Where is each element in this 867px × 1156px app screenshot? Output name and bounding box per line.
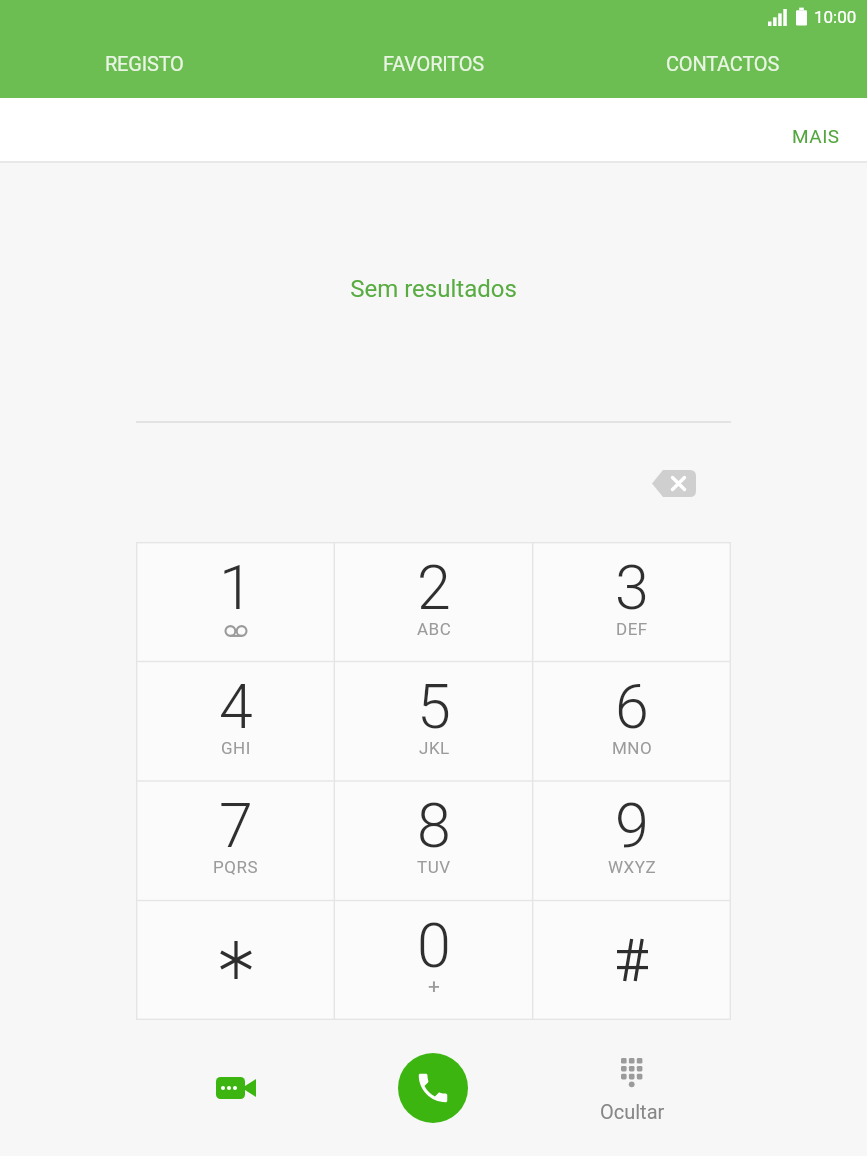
staticText: DEF bbox=[616, 619, 648, 639]
staticText: 3 bbox=[615, 552, 649, 623]
staticText: MAIS bbox=[792, 125, 840, 147]
staticText: Sem resultados bbox=[0, 275, 867, 303]
button[interactable] bbox=[186, 1038, 286, 1138]
button[interactable]: CONTACTOS bbox=[578, 33, 867, 98]
button[interactable]: 9 bbox=[533, 780, 731, 900]
staticText: 9 bbox=[615, 790, 649, 861]
button[interactable]: FAVORITOS bbox=[289, 33, 578, 98]
staticText: TUV bbox=[417, 857, 451, 877]
button[interactable]: 4 bbox=[136, 661, 335, 780]
button[interactable]: 3 bbox=[533, 542, 731, 661]
staticText: WXYZ bbox=[608, 857, 657, 877]
staticText: MNO bbox=[612, 738, 653, 758]
button[interactable]: 6 bbox=[533, 661, 731, 780]
staticText: REGISTO bbox=[105, 52, 184, 75]
button[interactable]: Ocultar bbox=[582, 1045, 682, 1135]
staticText: CONTACTOS bbox=[666, 52, 780, 75]
staticText: 8 bbox=[417, 790, 451, 861]
button[interactable]: 0 bbox=[335, 900, 533, 1020]
staticText: PQRS bbox=[213, 857, 258, 877]
staticText: 4 bbox=[219, 671, 253, 742]
staticText: JKL bbox=[419, 738, 450, 758]
staticText: FAVORITOS bbox=[383, 52, 484, 75]
staticText: 10:00 bbox=[814, 7, 857, 27]
button[interactable]: 7 bbox=[136, 780, 335, 900]
button[interactable]: 1 bbox=[136, 542, 335, 661]
button[interactable] bbox=[398, 1053, 468, 1123]
button[interactable]: REGISTO bbox=[0, 33, 289, 98]
staticText: 1 bbox=[219, 552, 253, 623]
staticText: 7 bbox=[219, 790, 253, 861]
button[interactable]: 8 bbox=[335, 780, 533, 900]
staticText: ABC bbox=[417, 619, 452, 639]
staticText: Ocultar bbox=[600, 1100, 665, 1123]
staticText: + bbox=[428, 974, 441, 999]
button[interactable]: 5 bbox=[335, 661, 533, 780]
staticText: 5 bbox=[417, 671, 451, 742]
button[interactable] bbox=[643, 461, 705, 506]
button[interactable]: 2 bbox=[335, 542, 533, 661]
staticText: 2 bbox=[417, 552, 451, 623]
button[interactable] bbox=[533, 900, 731, 1020]
staticText: 0 bbox=[417, 910, 451, 981]
staticText: 6 bbox=[615, 671, 649, 742]
staticText: GHI bbox=[221, 738, 251, 758]
button[interactable] bbox=[136, 900, 335, 1020]
button[interactable]: MAIS bbox=[792, 98, 867, 161]
